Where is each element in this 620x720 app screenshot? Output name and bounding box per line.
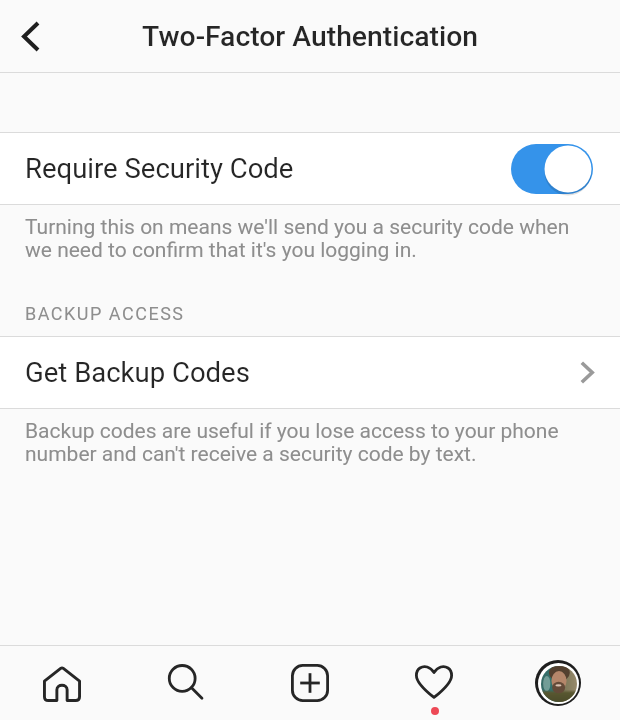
button[interactable]: Activity [372, 646, 496, 720]
button[interactable]: Profile [496, 646, 620, 720]
button[interactable]: Back [7, 12, 55, 60]
button[interactable]: Get Backup Codes [0, 337, 620, 408]
button[interactable]: Home [0, 646, 124, 720]
other: Open [580, 361, 594, 384]
staticText: BACKUP ACCESS [25, 303, 185, 324]
staticText: Two-Factor Authentication [142, 20, 479, 53]
staticText: Get Backup Codes [25, 356, 250, 388]
staticText: Turning this on means we'll send you a s… [25, 215, 590, 262]
staticText: Backup codes are useful if you lose acce… [25, 419, 590, 466]
staticText: Require Security Code [25, 152, 294, 184]
button[interactable]: Require Security Code, on [511, 144, 593, 194]
button[interactable]: Require Security Code [0, 133, 620, 204]
button[interactable]: Search [124, 646, 248, 720]
button[interactable]: New post [248, 646, 372, 720]
